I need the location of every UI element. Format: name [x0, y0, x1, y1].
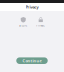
staticText: Privacy [25, 4, 38, 10]
staticText: Private [36, 24, 45, 27]
staticText: Secure [19, 24, 28, 27]
button[interactable]: Continue [16, 57, 48, 64]
staticText: Continue [22, 58, 41, 63]
